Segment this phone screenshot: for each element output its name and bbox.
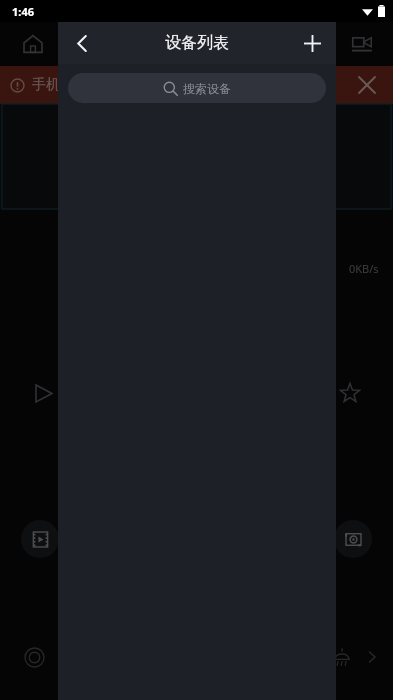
staticText: 手机未连接到摄像机 [32,76,158,94]
button[interactable]: 搜索设备 [68,73,326,103]
button[interactable]: Favorite [333,376,367,410]
staticText: 设备列表 [165,33,229,53]
button[interactable]: More [359,644,385,670]
button[interactable]: Add device [288,22,336,64]
button[interactable]: Monitor [347,29,377,59]
button[interactable]: Play [26,376,60,410]
staticText: 0KB/s [349,261,379,276]
button[interactable]: Settings [18,641,50,673]
button[interactable] [0,22,393,700]
button[interactable]: Light [325,640,359,674]
staticText: 1:46 [12,4,34,19]
button[interactable]: Album [21,520,59,558]
button[interactable]: Close [347,66,387,104]
staticText: 搜索设备 [183,81,231,96]
button[interactable]: Capture [334,520,372,558]
button[interactable]: 手机未连接到摄像机 [0,66,393,104]
button[interactable]: Back [58,22,106,64]
button[interactable]: Home [18,29,48,59]
